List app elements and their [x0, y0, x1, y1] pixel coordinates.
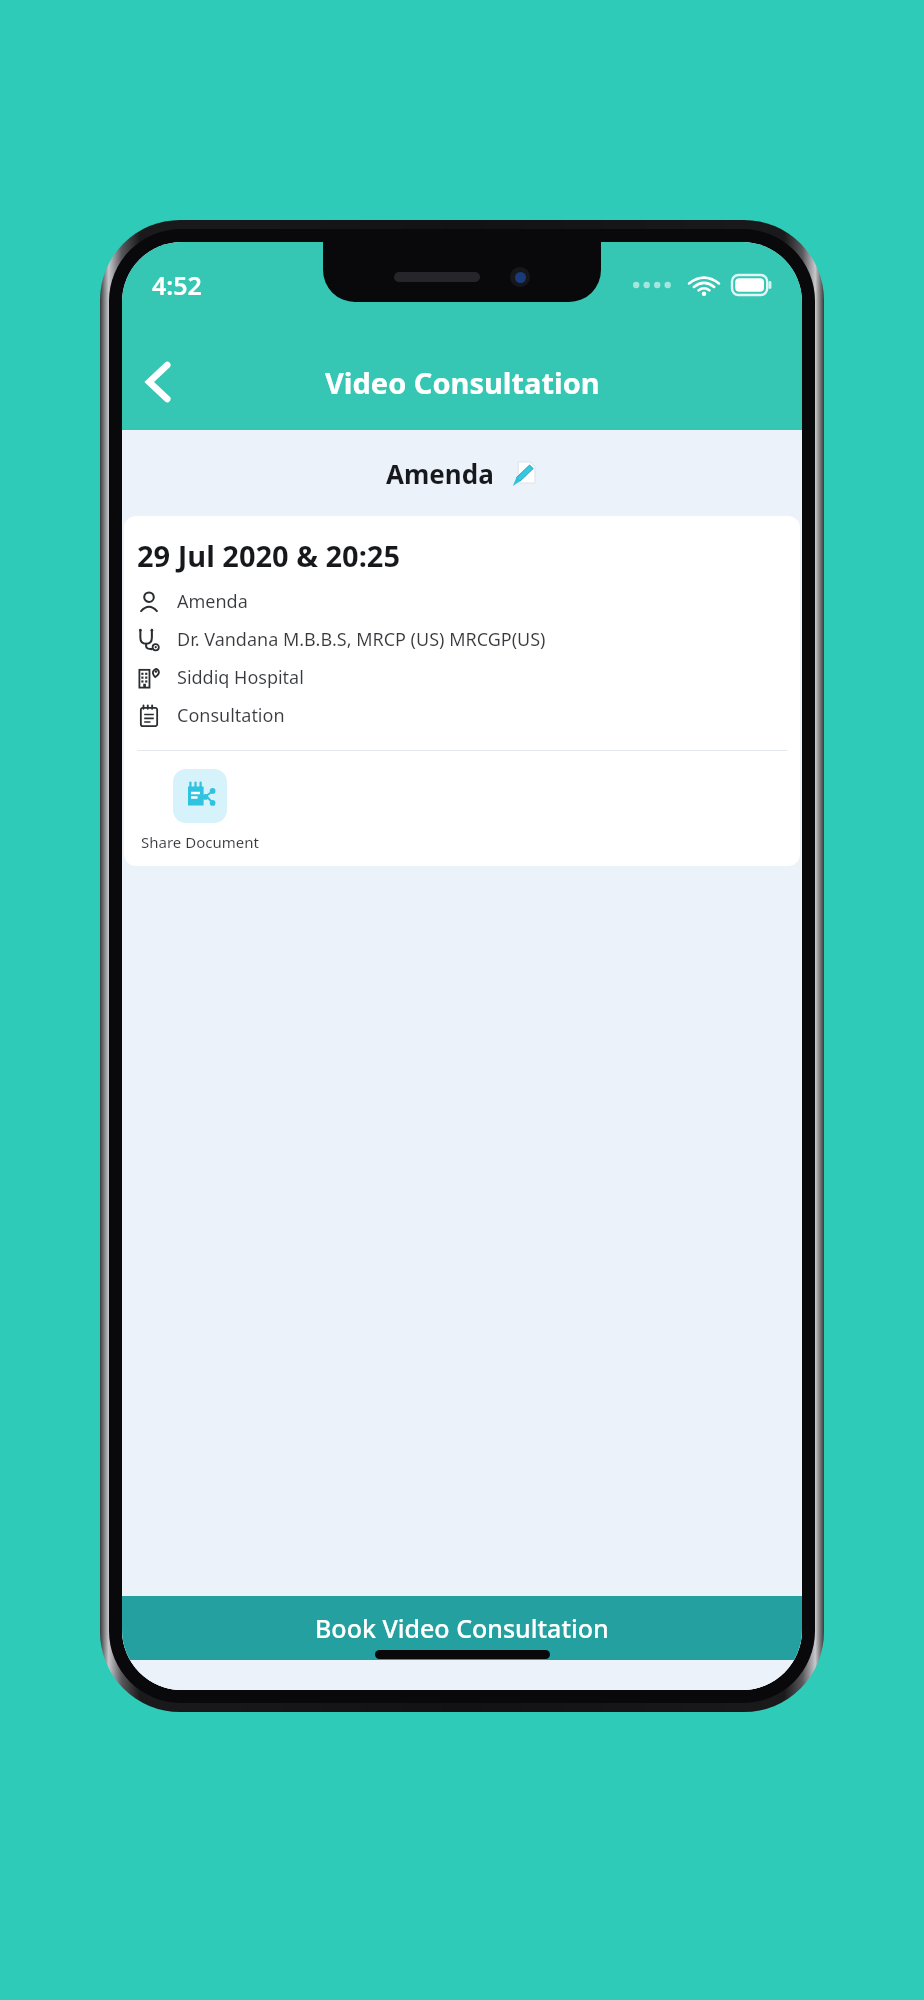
staticText: Consultation [177, 703, 285, 728]
staticText: Share Document [141, 832, 259, 852]
staticText: Dr. Vandana M.B.B.S, MRCP (US) MRCGP(US) [177, 627, 546, 652]
staticText: Video Consultation [325, 363, 600, 402]
button[interactable]: 29 Jul 2020 & 20:25 [124, 516, 800, 866]
staticText: Siddiq Hospital [177, 665, 304, 690]
staticText: Amenda [177, 589, 248, 614]
button[interactable]: Back [128, 351, 190, 413]
button[interactable]: Amenda [380, 452, 545, 495]
button[interactable]: Book Video Consultation [122, 1596, 802, 1660]
staticText: 29 Jul 2020 & 20:25 [137, 536, 401, 575]
other: Edit [507, 458, 539, 490]
button[interactable]: Share Document [137, 769, 263, 852]
staticText: Amenda [386, 456, 494, 491]
staticText: 4:52 [152, 268, 202, 302]
staticText: Book Video Consultation [315, 1611, 609, 1645]
